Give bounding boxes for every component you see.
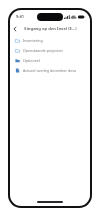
staticText: 9:41 xyxy=(16,14,24,19)
staticText: Eingang op den Insel (E...) xyxy=(24,26,77,32)
button[interactable]: Inventering xyxy=(10,35,90,45)
staticText: Inventering xyxy=(23,38,43,43)
staticText: Optioneel xyxy=(23,58,40,63)
button[interactable]: Back xyxy=(10,24,20,34)
button[interactable]: Optioneel xyxy=(10,55,90,65)
button[interactable]: Openstaande projecten xyxy=(10,45,90,55)
staticText: Actueel overleg december docu xyxy=(23,68,77,73)
button[interactable]: Actueel overleg december docu xyxy=(10,65,90,75)
staticText: Openstaande projecten xyxy=(23,48,63,53)
